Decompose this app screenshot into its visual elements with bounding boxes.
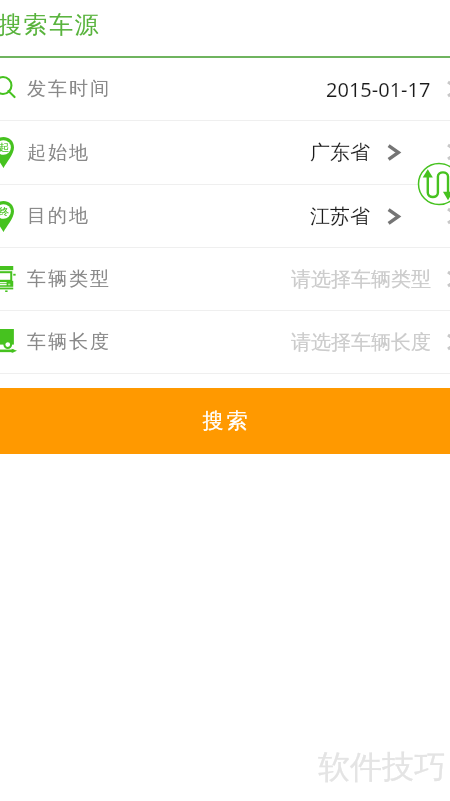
button[interactable]: 终 bbox=[0, 185, 450, 247]
staticText: 搜索车源 bbox=[0, 10, 101, 40]
button[interactable]: 发车时间 bbox=[0, 58, 450, 120]
staticText: 搜索 bbox=[201, 408, 249, 434]
button[interactable]: 起 bbox=[0, 121, 450, 184]
button[interactable]: 搜索 bbox=[0, 388, 450, 454]
staticText: 发车时间 bbox=[26, 77, 110, 101]
staticText: 江苏省 bbox=[310, 204, 370, 229]
staticText: 车辆长度 bbox=[26, 330, 110, 354]
staticText: 广东省 bbox=[310, 140, 370, 165]
staticText: 请选择车辆长度 bbox=[291, 330, 431, 355]
staticText: 车辆类型 bbox=[26, 267, 110, 291]
staticText: 起始地 bbox=[26, 141, 89, 165]
button[interactable]: Swap origin and destination bbox=[417, 162, 450, 206]
staticText: 2015-01-17 bbox=[326, 76, 431, 103]
staticText: 请选择车辆类型 bbox=[291, 267, 431, 292]
staticText: 软件技巧 bbox=[318, 747, 446, 787]
staticText: 起 bbox=[0, 141, 9, 154]
staticText: 目的地 bbox=[26, 204, 89, 228]
staticText: 终 bbox=[0, 205, 9, 218]
button[interactable]: 车辆长度 bbox=[0, 311, 450, 373]
button[interactable]: 车辆类型 bbox=[0, 248, 450, 310]
